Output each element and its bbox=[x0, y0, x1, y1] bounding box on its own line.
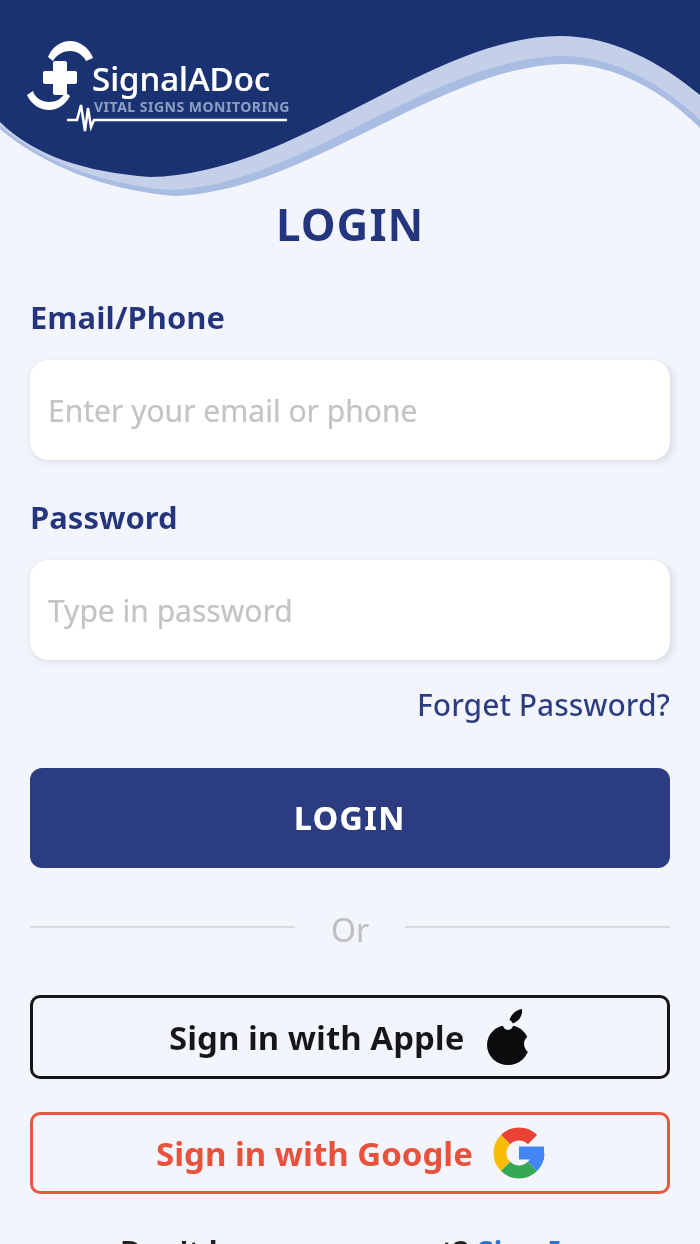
staticText: Don't have an account? bbox=[120, 1231, 477, 1244]
staticText: Type in password bbox=[48, 590, 293, 631]
button[interactable]: Sign in with Apple bbox=[30, 995, 670, 1079]
button[interactable]: Forget Password? bbox=[417, 684, 670, 725]
staticText: LOGIN bbox=[294, 796, 406, 840]
staticText: VITAL SIGNS MONITORING bbox=[94, 97, 290, 116]
button[interactable]: Type in password bbox=[30, 560, 670, 660]
staticText: SignalADoc bbox=[92, 56, 271, 101]
button[interactable]: LOGIN bbox=[30, 768, 670, 868]
staticText: Password bbox=[30, 496, 178, 538]
staticText: Sign in with Google bbox=[156, 1131, 473, 1176]
staticText: Sign in with Apple bbox=[169, 1015, 465, 1060]
button[interactable]: Enter your email or phone bbox=[30, 360, 670, 460]
staticText: Enter your email or phone bbox=[48, 390, 418, 431]
button[interactable]: Sign in with Google bbox=[30, 1112, 670, 1194]
staticText: Email/Phone bbox=[30, 296, 225, 338]
button[interactable]: Sign In bbox=[477, 1231, 580, 1244]
staticText: LOGIN bbox=[276, 194, 425, 254]
staticText: Or bbox=[331, 908, 370, 952]
